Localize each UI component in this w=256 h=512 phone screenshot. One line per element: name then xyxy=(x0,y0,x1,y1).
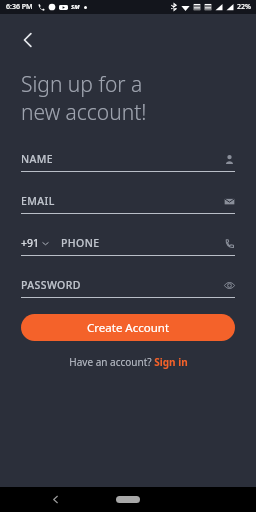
button[interactable]: Back xyxy=(42,487,68,512)
other: Name xyxy=(224,154,235,165)
staticText: Create Account xyxy=(87,320,170,336)
button[interactable]: EMAIL xyxy=(21,194,235,214)
button[interactable]: PASSWORD xyxy=(21,278,235,298)
button[interactable]: NAME xyxy=(21,152,235,172)
staticText: +91 xyxy=(21,236,40,250)
button[interactable]: Create Account xyxy=(21,314,235,341)
other: Email xyxy=(224,196,235,207)
staticText: Sign up for a new account! xyxy=(21,70,147,126)
staticText: PHONE xyxy=(61,236,100,250)
staticText: PASSWORD xyxy=(21,278,81,292)
button[interactable]: Home xyxy=(116,496,140,503)
button[interactable]: Have an account? Sign in xyxy=(0,355,256,369)
staticText: 6:36 PM xyxy=(6,2,33,12)
staticText: SM xyxy=(71,3,80,11)
staticText: NAME xyxy=(21,152,54,166)
other: Phone xyxy=(224,238,235,249)
button[interactable]: Back xyxy=(12,24,44,56)
staticText: EMAIL xyxy=(21,194,55,208)
other: Show password xyxy=(224,280,235,291)
staticText: Have an account? Sign in xyxy=(69,355,188,369)
button[interactable]: +91 xyxy=(21,236,235,256)
staticText: 22% xyxy=(237,2,251,12)
